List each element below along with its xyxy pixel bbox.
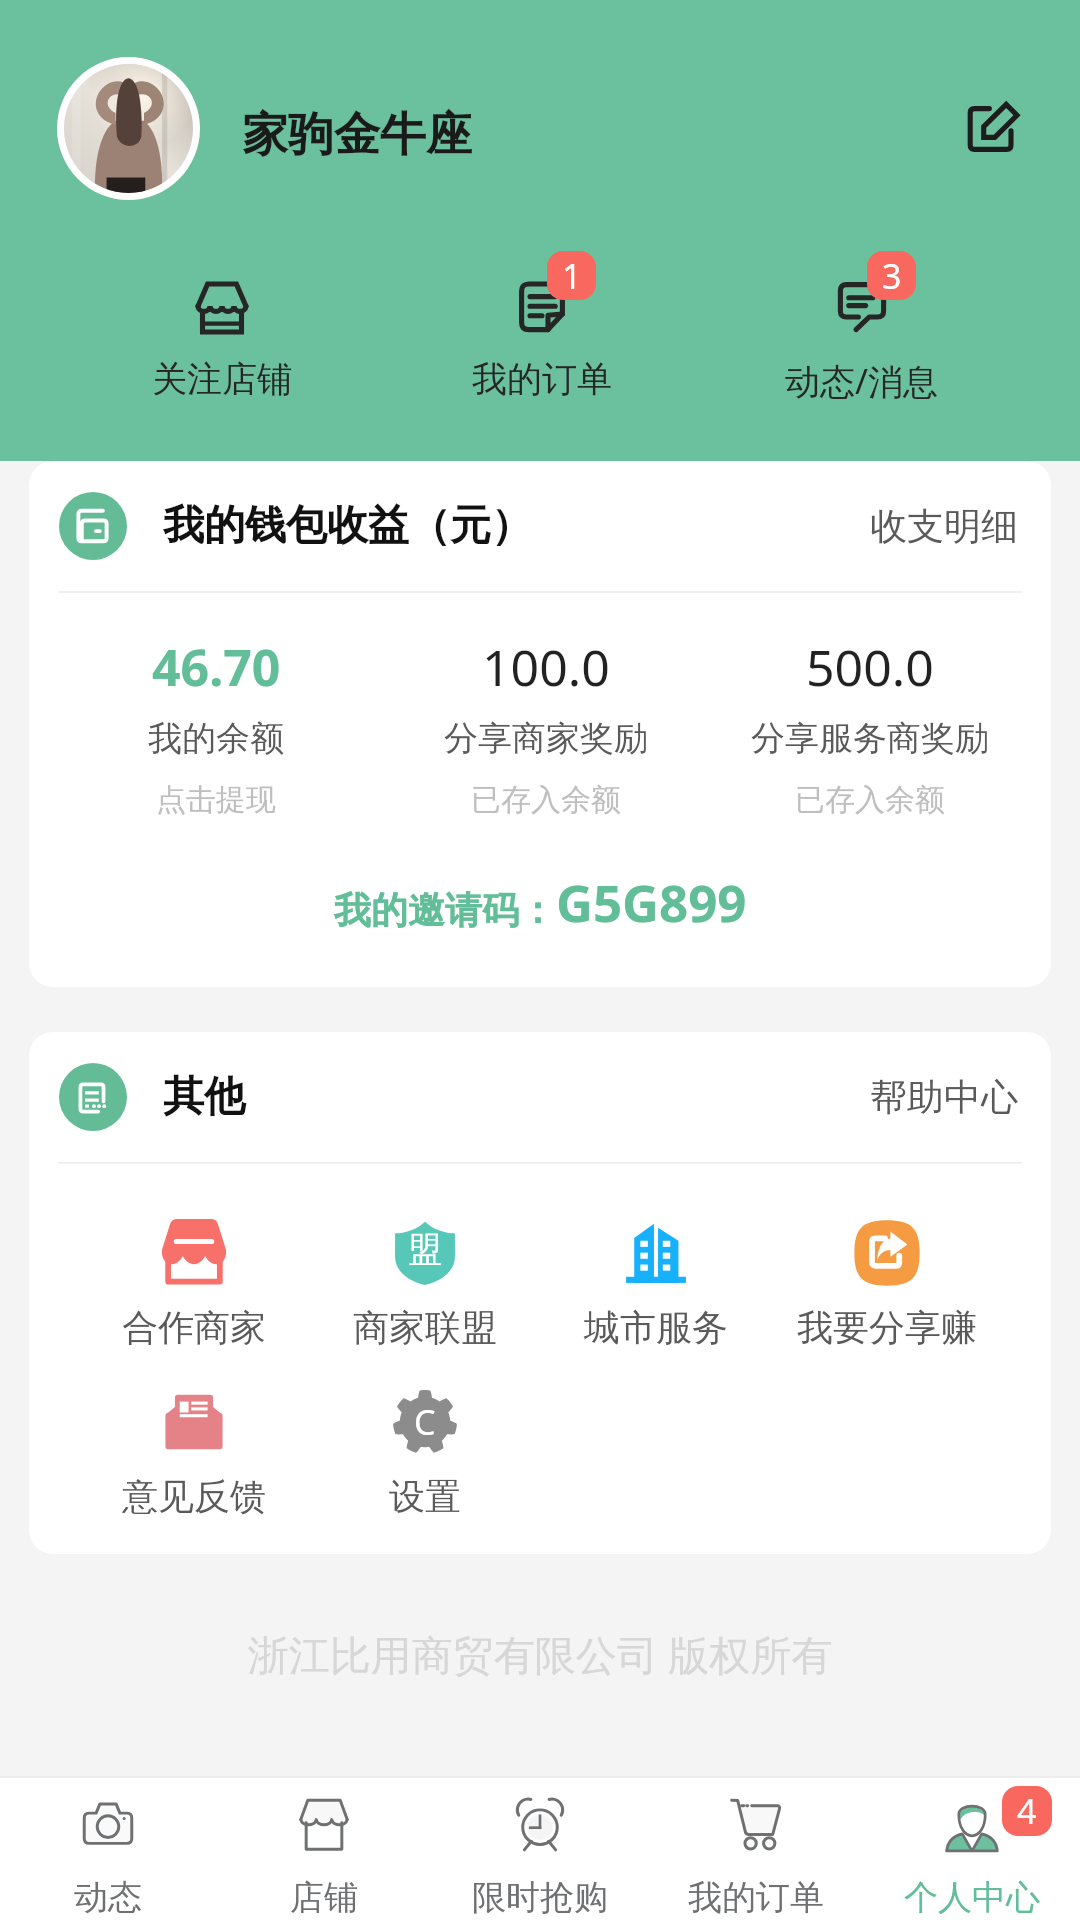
staticText: 设置 bbox=[389, 1474, 461, 1519]
button[interactable]: 合作商家 bbox=[64, 1219, 324, 1350]
staticText: 商家联盟 bbox=[353, 1305, 497, 1350]
button[interactable]: 我的订单 bbox=[648, 1778, 864, 1919]
button[interactable]: 限时抢购 bbox=[432, 1778, 648, 1919]
staticText: C bbox=[414, 1399, 436, 1445]
button[interactable]: 动态 bbox=[0, 1778, 216, 1919]
staticText: 动态 bbox=[74, 1876, 142, 1919]
staticText: 500.0 bbox=[806, 633, 934, 701]
staticText: 盟 bbox=[408, 1228, 442, 1271]
staticText: 帮助中心 bbox=[870, 1074, 1018, 1121]
button[interactable]: Profile photo bbox=[64, 64, 193, 193]
button[interactable]: 4 bbox=[864, 1778, 1080, 1919]
staticText: 我的订单 bbox=[472, 357, 612, 401]
staticText: 城市服务 bbox=[584, 1305, 728, 1350]
staticText: 我的邀请码： bbox=[334, 887, 556, 934]
staticText: 1 bbox=[562, 253, 582, 299]
staticText: 关注店铺 bbox=[152, 357, 292, 401]
staticText: 我的钱包收益（元） bbox=[163, 500, 532, 552]
button[interactable]: 我要分享赚 bbox=[757, 1219, 1017, 1350]
button[interactable]: 3 bbox=[742, 278, 982, 405]
staticText: 我要分享赚 bbox=[797, 1305, 977, 1350]
staticText: 收支明细 bbox=[870, 503, 1018, 550]
staticText: 个人中心 bbox=[904, 1876, 1040, 1919]
staticText: 已存入余额 bbox=[471, 781, 621, 819]
button[interactable]: 关注店铺 bbox=[102, 278, 342, 401]
button[interactable]: 意见反馈 bbox=[64, 1388, 324, 1519]
staticText: 我的订单 bbox=[688, 1876, 824, 1919]
button[interactable]: 46.70 bbox=[56, 593, 376, 819]
button[interactable]: 500.0 bbox=[710, 593, 1030, 819]
button[interactable]: 城市服务 bbox=[526, 1219, 786, 1350]
button[interactable]: 盟 bbox=[295, 1219, 555, 1350]
staticText: 限时抢购 bbox=[472, 1876, 608, 1919]
staticText: 家驹金牛座 bbox=[242, 106, 472, 164]
staticText: 店铺 bbox=[290, 1876, 358, 1919]
button[interactable]: C bbox=[295, 1388, 555, 1519]
staticText: 46.70 bbox=[152, 633, 281, 701]
staticText: 点击提现 bbox=[156, 781, 276, 819]
staticText: 分享服务商奖励 bbox=[751, 717, 989, 760]
staticText: 100.0 bbox=[482, 633, 610, 701]
staticText: 4 bbox=[1017, 1788, 1037, 1834]
staticText: 动态/消息 bbox=[785, 357, 939, 405]
button[interactable]: 收支明细 bbox=[866, 499, 1022, 554]
button[interactable]: 帮助中心 bbox=[866, 1070, 1022, 1125]
staticText: 其他 bbox=[163, 1071, 245, 1123]
staticText: 合作商家 bbox=[122, 1305, 266, 1350]
staticText: 我的余额 bbox=[148, 717, 284, 760]
button[interactable]: 店铺 bbox=[216, 1778, 432, 1919]
staticText: G5G899 bbox=[556, 867, 747, 936]
staticText: 浙江比用商贸有限公司 版权所有 bbox=[0, 1626, 1080, 1682]
button[interactable]: 100.0 bbox=[386, 593, 706, 819]
staticText: 意见反馈 bbox=[122, 1474, 266, 1519]
button[interactable]: 1 bbox=[422, 278, 662, 401]
staticText: 已存入余额 bbox=[795, 781, 945, 819]
staticText: 分享商家奖励 bbox=[444, 717, 648, 760]
button[interactable]: Edit profile bbox=[954, 90, 1032, 168]
button[interactable]: 我的邀请码： bbox=[29, 867, 1051, 936]
staticText: 3 bbox=[882, 253, 902, 299]
